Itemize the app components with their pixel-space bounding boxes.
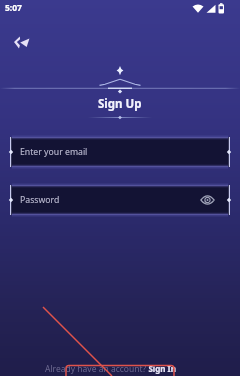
staticText: Sign Up <box>98 96 142 112</box>
button[interactable] <box>6 30 36 54</box>
button[interactable]: Password <box>10 185 230 215</box>
button[interactable]: Enter your email <box>10 137 230 167</box>
staticText: Already have an account? Sign In <box>45 363 176 375</box>
button[interactable]: Already have an account? Sign In <box>45 363 176 375</box>
staticText: Password <box>20 194 60 206</box>
staticText: 5:07 <box>5 2 22 14</box>
staticText: Enter your email <box>20 146 88 158</box>
